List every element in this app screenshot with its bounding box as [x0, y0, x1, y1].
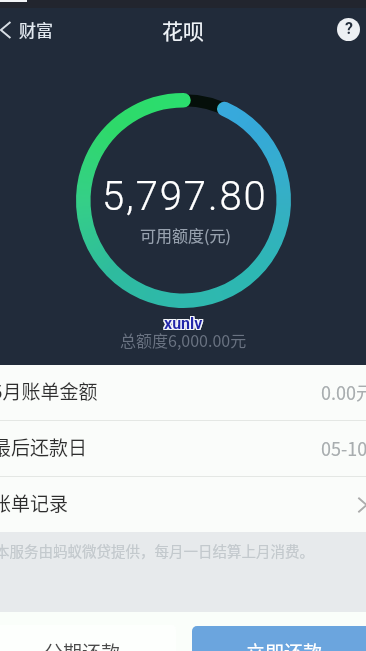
- staticText: xunlv: [165, 313, 204, 332]
- button[interactable]: 账单记录: [0, 477, 366, 532]
- staticText: xunlv: [165, 314, 204, 333]
- staticText: xunlv: [164, 314, 203, 333]
- button[interactable]: 财富: [0, 11, 63, 48]
- staticText: 最后还款日: [0, 433, 88, 461]
- button[interactable]: 最后还款日: [0, 421, 366, 476]
- staticText: xunlv: [164, 315, 203, 334]
- staticText: 5月账单金额: [0, 377, 98, 405]
- button[interactable]: 5月账单金额: [0, 365, 366, 420]
- button[interactable]: 分期还款: [0, 625, 176, 651]
- staticText: 总额度6,000.00元: [120, 328, 247, 351]
- button[interactable]: Help: [337, 18, 360, 41]
- staticText: 账单记录: [0, 489, 69, 517]
- staticText: xunlv: [165, 315, 204, 334]
- staticText: 花呗: [162, 15, 204, 45]
- staticText: xunlv: [164, 313, 203, 332]
- button[interactable]: 立即还款: [192, 626, 366, 651]
- staticText: 可用额度(元): [140, 223, 231, 246]
- staticText: 05-10: [321, 435, 366, 461]
- staticText: 分期还款: [44, 638, 121, 651]
- staticText: xunlv: [163, 314, 202, 333]
- staticText: 0.00元: [321, 379, 366, 405]
- staticText: xunlv: [163, 313, 202, 332]
- staticText: ?: [345, 19, 353, 38]
- staticText: 立即还款: [246, 638, 323, 651]
- staticText: 5,797.80: [102, 173, 268, 220]
- staticText: 财富: [19, 17, 53, 42]
- staticText: 本服务由蚂蚁微贷提供，每月一日结算上月消费。: [0, 540, 314, 561]
- staticText: xunlv: [163, 315, 202, 334]
